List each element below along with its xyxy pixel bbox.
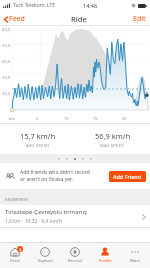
staticText: Edit bbox=[133, 14, 146, 24]
staticText: AVG SPEED bbox=[26, 143, 50, 148]
staticText: 15 bbox=[93, 116, 98, 121]
button[interactable]: Feed bbox=[3, 12, 26, 26]
button[interactable]: Profile bbox=[90, 243, 120, 268]
staticText: SEGMENTS bbox=[5, 197, 29, 202]
staticText: or aren't on Strava yet. bbox=[20, 176, 74, 183]
staticText: 40,0 bbox=[2, 59, 11, 65]
button[interactable]: Add Friend bbox=[109, 171, 146, 182]
staticText: 10 bbox=[64, 116, 69, 121]
staticText: Feed bbox=[10, 258, 20, 264]
button[interactable]: More bbox=[120, 243, 150, 268]
button[interactable]: Explore bbox=[30, 243, 60, 268]
staticText: Add friends who didn't record bbox=[20, 169, 90, 176]
staticText: 15,7 km/h bbox=[20, 131, 56, 141]
staticText: 56,9 km/h bbox=[95, 131, 131, 141]
staticText: 30,0 bbox=[2, 75, 11, 81]
staticText: Tınaztepe-Çevreyolu tırmanış bbox=[5, 208, 87, 216]
staticText: 2 bbox=[19, 247, 22, 252]
staticText: 50,0 bbox=[2, 43, 11, 49]
staticText: Feed bbox=[9, 14, 25, 24]
staticText: 20,0 bbox=[2, 91, 11, 97]
staticText: Ride bbox=[71, 14, 87, 24]
staticText: 5 bbox=[36, 116, 39, 121]
button[interactable]: Edit bbox=[132, 12, 147, 26]
other: Friends bbox=[5, 172, 16, 181]
staticText: km bbox=[9, 116, 15, 121]
staticText: 20 bbox=[122, 116, 127, 121]
button[interactable]: 2 bbox=[0, 243, 30, 268]
staticText: More bbox=[130, 258, 141, 264]
staticText: Add Friend bbox=[113, 173, 142, 180]
staticText: 1,6 km · 10:32 · 9,4 km/h bbox=[5, 218, 63, 225]
staticText: 14:46 bbox=[83, 2, 98, 9]
staticText: Turk Telekom bbox=[13, 2, 45, 9]
staticText: 60,0 bbox=[2, 27, 11, 33]
button[interactable]: Tınaztepe-Çevreyolu tırmanış bbox=[0, 205, 150, 228]
button[interactable]: Record bbox=[60, 243, 90, 268]
staticText: MAX SPEED bbox=[100, 143, 125, 148]
staticText: LTE bbox=[47, 2, 56, 9]
staticText: Explore bbox=[38, 258, 53, 264]
staticText: Record bbox=[68, 258, 82, 264]
button[interactable]: Friends bbox=[0, 163, 150, 189]
staticText: Profile bbox=[99, 258, 112, 264]
